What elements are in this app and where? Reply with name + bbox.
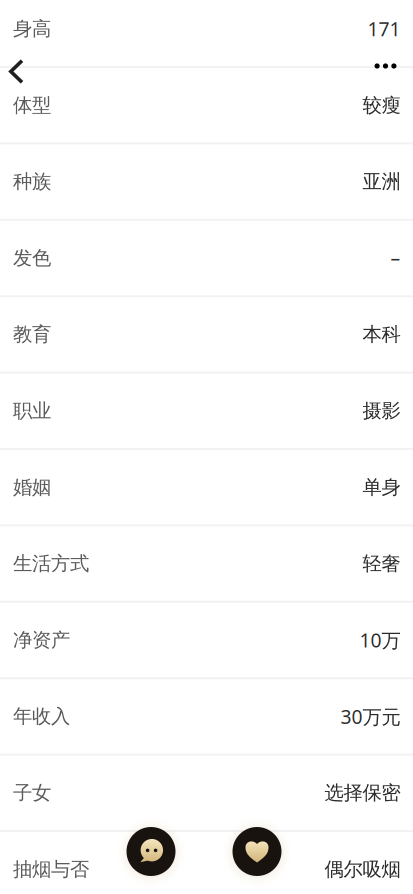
staticText: 171 [367, 16, 400, 42]
staticText: 选择保密 [324, 781, 400, 805]
staticText: 30万元 [340, 703, 400, 729]
staticText: 生活方式 [13, 551, 89, 576]
button[interactable]: Like [232, 827, 281, 876]
staticText: 净资产 [13, 628, 70, 652]
staticText: 种族 [13, 169, 51, 194]
staticText: 轻奢 [362, 551, 400, 576]
button[interactable]: 净资产 [0, 603, 413, 679]
button[interactable]: Message [126, 827, 175, 876]
button[interactable]: 种族 [0, 144, 413, 221]
staticText: 单身 [362, 475, 400, 499]
button[interactable]: More options [363, 48, 407, 84]
staticText: 职业 [13, 399, 51, 423]
staticText: 10万 [359, 627, 400, 653]
staticText: 体型 [13, 93, 51, 117]
staticText: 抽烟与否 [13, 857, 89, 881]
staticText: 身高 [13, 17, 51, 41]
staticText: 子女 [13, 781, 51, 805]
staticText: – [390, 245, 400, 271]
staticText: 摄影 [362, 399, 400, 423]
staticText: 偶尔吸烟 [324, 857, 400, 881]
button[interactable]: 职业 [0, 374, 413, 450]
button[interactable]: 体型 [0, 68, 413, 144]
staticText: 教育 [13, 322, 51, 347]
button[interactable]: 发色 [0, 221, 413, 297]
button[interactable]: 身高 [0, 0, 413, 68]
button[interactable]: 年收入 [0, 679, 413, 756]
button[interactable]: 婚姻 [0, 450, 413, 526]
staticText: 亚洲 [362, 169, 400, 194]
staticText: 本科 [362, 322, 400, 347]
staticText: 较瘦 [362, 93, 400, 117]
button[interactable]: 生活方式 [0, 526, 413, 603]
staticText: 发色 [13, 246, 51, 270]
button[interactable]: 抽烟与否 [0, 832, 413, 894]
button[interactable]: 教育 [0, 297, 413, 374]
button[interactable]: 子女 [0, 756, 413, 832]
staticText: 婚姻 [13, 475, 51, 499]
staticText: 年收入 [13, 704, 70, 729]
button[interactable]: Back [0, 49, 38, 93]
